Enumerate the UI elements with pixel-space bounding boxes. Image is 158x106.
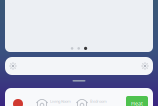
staticText: Heat bbox=[131, 100, 143, 106]
staticText: Bedroom bbox=[90, 98, 107, 104]
button[interactable]: App bbox=[13, 99, 23, 106]
button[interactable]: Living Room bbox=[36, 97, 71, 106]
button[interactable]: Heat bbox=[126, 96, 148, 106]
button[interactable]: Bedroom bbox=[76, 97, 108, 106]
button[interactable]: Brightness bbox=[5, 57, 153, 75]
staticText: Living Room bbox=[50, 98, 71, 104]
